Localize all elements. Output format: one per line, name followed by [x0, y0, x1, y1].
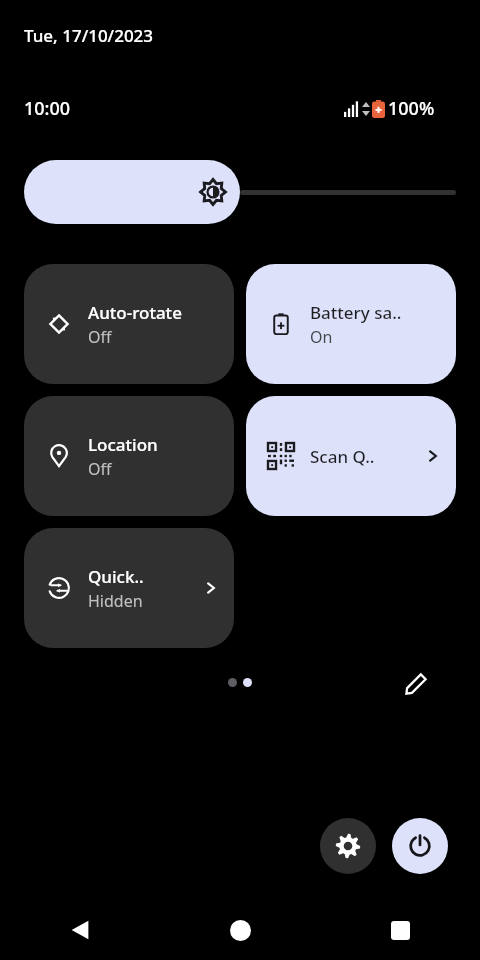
button[interactable]: Settings: [320, 818, 376, 874]
button[interactable]: Quick..: [24, 528, 234, 648]
button[interactable]: Home: [160, 900, 320, 960]
staticText: Tue, 17/10/2023: [24, 24, 154, 47]
staticText: Quick..: [88, 565, 144, 588]
staticText: Hidden: [88, 590, 143, 612]
staticText: 10:00: [24, 96, 71, 121]
staticText: 100%: [388, 96, 435, 121]
staticText: On: [310, 326, 333, 348]
button[interactable]: Back: [0, 900, 160, 960]
button[interactable]: Edit tiles: [396, 664, 436, 704]
button[interactable]: Battery sa..: [246, 264, 456, 384]
staticText: Location: [88, 433, 158, 456]
staticText: Off: [88, 326, 112, 348]
staticText: Scan Q..: [310, 445, 375, 468]
button[interactable]: Auto-rotate: [24, 264, 234, 384]
button[interactable]: Brightness: [24, 160, 456, 224]
button[interactable]: Recents: [320, 900, 480, 960]
staticText: Battery sa..: [310, 301, 402, 324]
button[interactable]: Scan Q..: [246, 396, 456, 516]
button[interactable]: Power: [392, 818, 448, 874]
staticText: Auto-rotate: [88, 301, 182, 324]
staticText: Off: [88, 458, 112, 480]
button[interactable]: Location: [24, 396, 234, 516]
